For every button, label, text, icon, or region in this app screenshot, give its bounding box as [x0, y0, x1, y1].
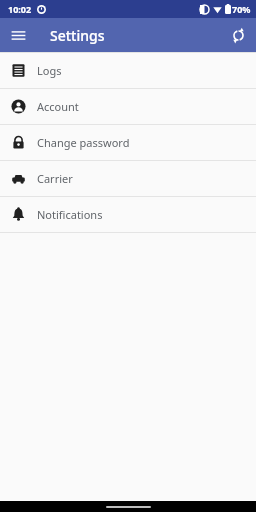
staticText: 10:02 [8, 3, 32, 15]
button[interactable]: Change password [0, 125, 256, 160]
button[interactable]: Notifications [0, 197, 256, 232]
staticText: Carrier [37, 171, 73, 186]
button[interactable]: Logs [0, 53, 256, 88]
button[interactable]: Account [0, 89, 256, 124]
staticText: Settings [50, 26, 105, 45]
staticText: 70% [232, 3, 251, 15]
staticText: Change password [37, 135, 130, 150]
staticText: Logs [37, 63, 62, 78]
staticText: Notifications [37, 207, 103, 222]
button[interactable]: Sync [224, 21, 252, 49]
button[interactable]: Open navigation menu [4, 21, 32, 49]
staticText: Account [37, 99, 79, 114]
button[interactable]: Carrier [0, 161, 256, 196]
